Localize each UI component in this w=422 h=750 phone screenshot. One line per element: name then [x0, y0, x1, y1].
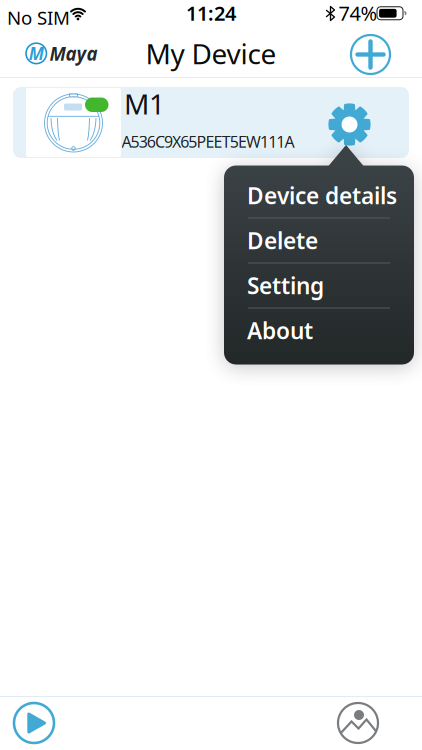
staticText: About	[247, 315, 313, 345]
button[interactable]	[351, 35, 390, 74]
staticText: 11:24	[186, 0, 236, 26]
button[interactable]: Device details	[247, 173, 413, 218]
button[interactable]	[338, 703, 378, 743]
button[interactable]	[14, 703, 54, 743]
staticText: M	[29, 42, 44, 65]
staticText: My Device	[145, 35, 276, 72]
staticText: Setting	[247, 270, 324, 300]
staticText: Maya	[49, 41, 97, 66]
button[interactable]: About	[247, 308, 413, 353]
staticText: A536C9X65PEET5EW111A	[121, 131, 294, 152]
button[interactable]: Setting	[247, 263, 413, 308]
button[interactable]	[329, 104, 369, 144]
staticText: Delete	[247, 225, 318, 255]
staticText: M1	[124, 85, 165, 122]
staticText: Device details	[247, 180, 397, 210]
button[interactable]: Delete	[247, 218, 413, 263]
staticText: 74%	[338, 0, 377, 26]
button[interactable]: M1	[13, 87, 409, 158]
staticText: No SIM	[7, 5, 70, 30]
